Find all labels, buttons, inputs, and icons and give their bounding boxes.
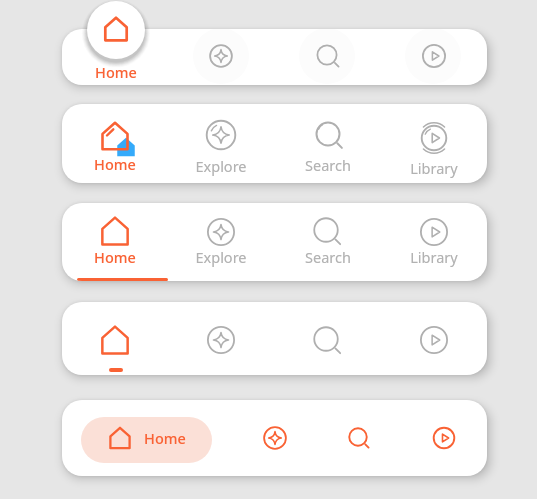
button[interactable]: Explore bbox=[168, 302, 274, 375]
button[interactable]: Library bbox=[380, 29, 486, 85]
button[interactable] bbox=[168, 203, 274, 281]
button[interactable]: Search bbox=[274, 29, 380, 85]
button[interactable]: Home bbox=[62, 302, 168, 375]
staticText: Search bbox=[305, 247, 351, 267]
button[interactable]: Explore bbox=[168, 29, 274, 85]
button[interactable] bbox=[274, 203, 380, 281]
staticText: Home bbox=[144, 428, 186, 448]
button[interactable]: Search bbox=[274, 302, 380, 375]
button[interactable] bbox=[380, 104, 486, 183]
button[interactable]: Search bbox=[316, 400, 400, 471]
button[interactable]: Library bbox=[402, 400, 486, 472]
button[interactable] bbox=[274, 104, 380, 183]
staticText: Search bbox=[305, 155, 351, 175]
button[interactable] bbox=[62, 104, 168, 183]
staticText: Library bbox=[410, 247, 458, 267]
button[interactable] bbox=[62, 203, 168, 281]
staticText: Home bbox=[95, 62, 137, 82]
staticText: Explore bbox=[195, 247, 247, 267]
button[interactable]: Explore bbox=[233, 400, 317, 472]
staticText: Home bbox=[94, 154, 136, 174]
staticText: Library bbox=[410, 158, 458, 178]
button[interactable] bbox=[168, 104, 274, 183]
staticText: Explore bbox=[195, 156, 247, 176]
button[interactable]: Home bbox=[62, 29, 168, 85]
button[interactable]: Library bbox=[380, 302, 486, 375]
staticText: Home bbox=[94, 247, 136, 267]
button[interactable] bbox=[380, 203, 486, 281]
button[interactable]: Home bbox=[81, 417, 212, 463]
button[interactable]: Home bbox=[87, 1, 145, 59]
